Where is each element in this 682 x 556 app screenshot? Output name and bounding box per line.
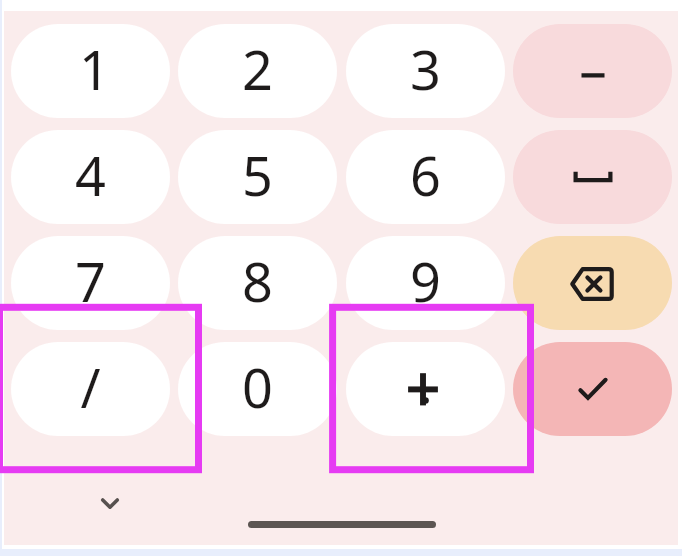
button[interactable]: 0: [178, 342, 337, 436]
staticText: 2: [242, 32, 273, 106]
button[interactable]: Hide keyboard: [85, 480, 134, 528]
button[interactable]: 6: [346, 130, 505, 224]
staticText: 0: [242, 350, 273, 424]
button[interactable]: 4: [11, 130, 170, 224]
staticText: /: [80, 350, 101, 424]
staticText: 4: [75, 138, 106, 212]
button[interactable]: Plus: [346, 342, 505, 436]
button[interactable]: 2: [178, 24, 337, 118]
staticText: 3: [410, 32, 441, 106]
button[interactable]: /: [11, 342, 170, 436]
button[interactable]: 5: [178, 130, 337, 224]
button[interactable]: 1: [11, 24, 170, 118]
button[interactable]: Space: [513, 130, 672, 224]
staticText: 1: [79, 32, 110, 106]
button[interactable]: Minus: [513, 24, 672, 118]
button[interactable]: Done: [513, 342, 672, 436]
button[interactable]: 8: [178, 236, 337, 330]
staticText: 8: [242, 244, 273, 318]
button[interactable]: 3: [346, 24, 505, 118]
staticText: 9: [410, 244, 441, 318]
staticText: 6: [410, 138, 441, 212]
staticText: 5: [242, 138, 273, 212]
button[interactable]: 7: [11, 236, 170, 330]
button[interactable]: Backspace: [513, 236, 672, 330]
staticText: 7: [75, 244, 106, 318]
button[interactable]: 9: [346, 236, 505, 330]
